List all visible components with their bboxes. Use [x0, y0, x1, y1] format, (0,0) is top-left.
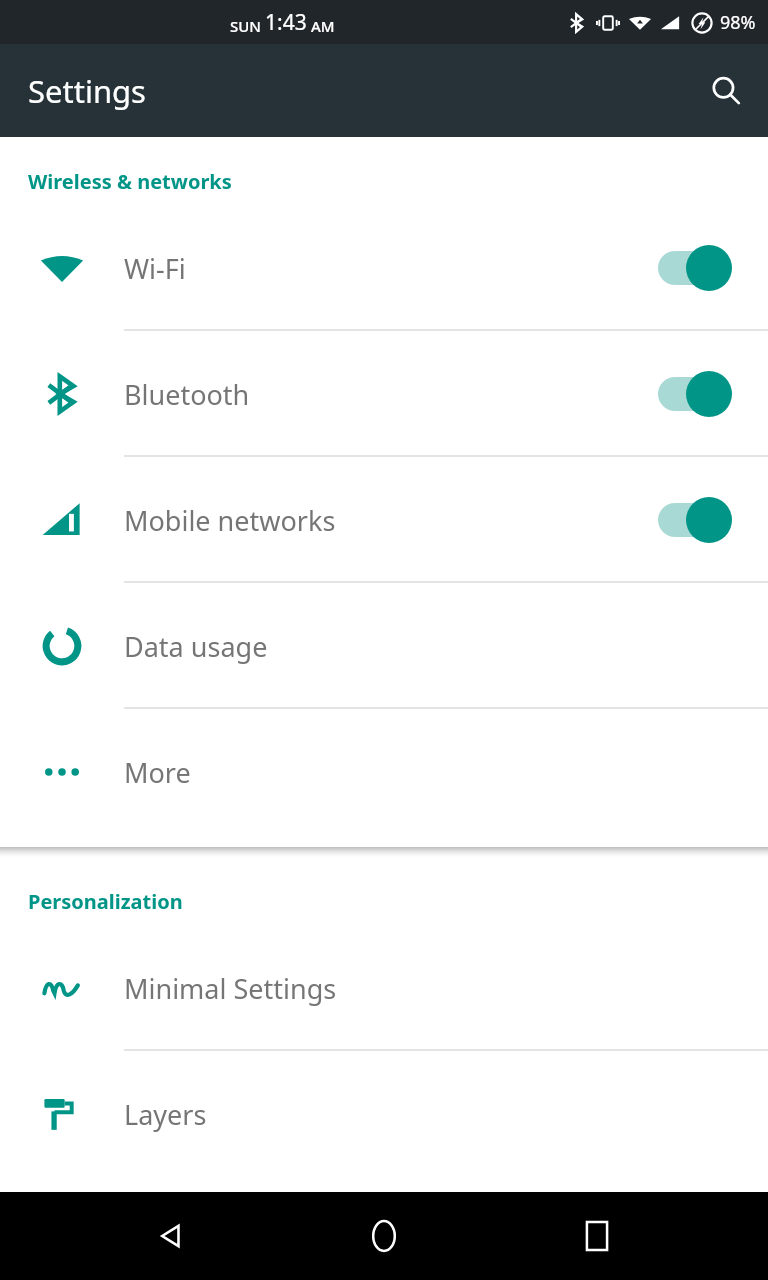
- button[interactable]: Data usage: [0, 583, 768, 709]
- button[interactable]: Bluetooth: [0, 331, 768, 457]
- staticText: Minimal Settings: [124, 970, 768, 1007]
- staticText: 98%: [720, 10, 756, 35]
- staticText: SUN: [230, 16, 265, 36]
- button[interactable]: Recent apps: [555, 1194, 639, 1278]
- staticText: Data usage: [124, 628, 768, 665]
- staticText: Personalization: [28, 888, 183, 915]
- button[interactable]: Back: [129, 1194, 213, 1278]
- button[interactable]: Home: [342, 1194, 426, 1278]
- button[interactable]: Layers: [0, 1051, 768, 1177]
- staticText: More: [124, 754, 768, 791]
- staticText: 1:43: [265, 8, 307, 37]
- button[interactable]: More: [0, 709, 768, 835]
- button[interactable]: Minimal Settings: [0, 925, 768, 1051]
- staticText: Layers: [124, 1096, 768, 1133]
- staticText: AM: [307, 16, 335, 36]
- staticText: Mobile networks: [124, 502, 654, 539]
- button[interactable]: Wi-Fi: [0, 205, 768, 331]
- button[interactable]: Mobile networks: [0, 457, 768, 583]
- staticText: Wireless & networks: [28, 168, 232, 195]
- staticText: Wi-Fi: [124, 250, 654, 287]
- button[interactable]: Search: [698, 63, 754, 119]
- staticText: Settings: [28, 70, 146, 112]
- staticText: Bluetooth: [124, 376, 654, 413]
